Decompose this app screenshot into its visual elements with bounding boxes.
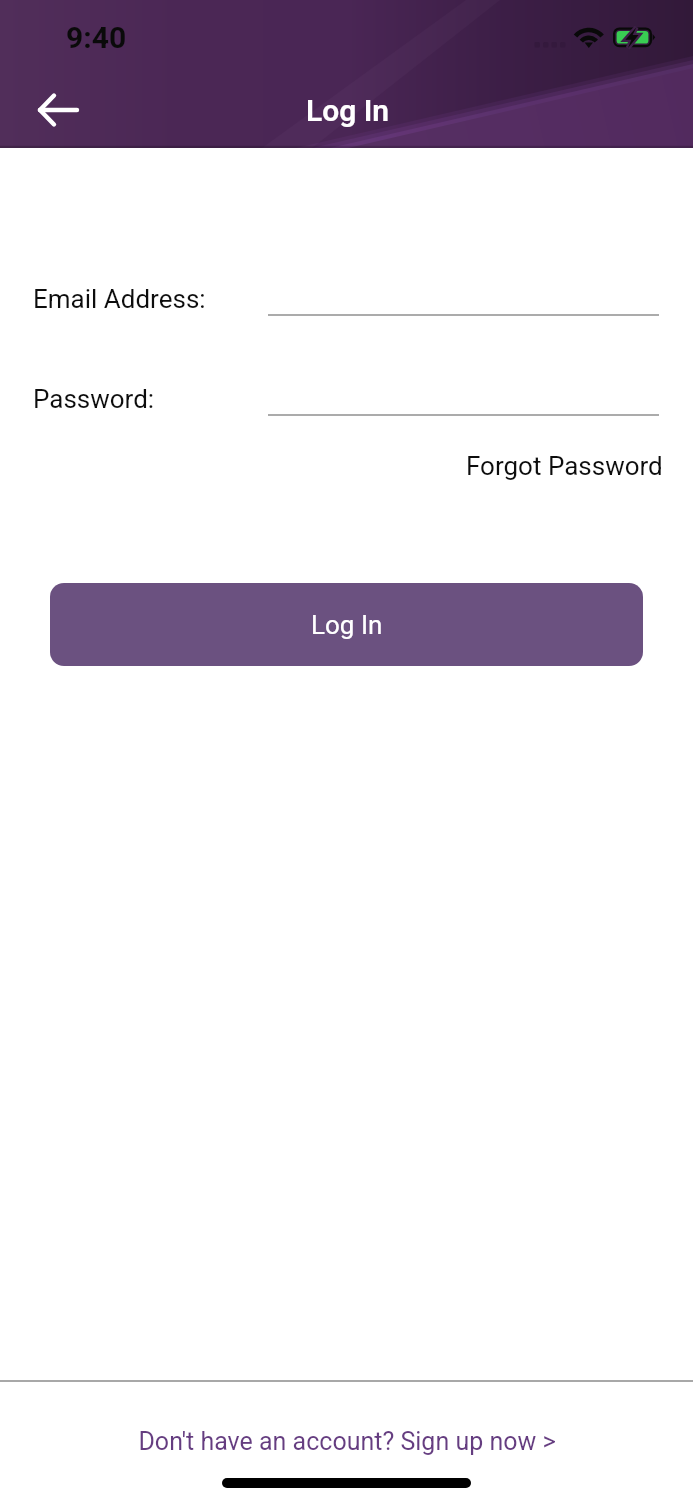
staticText: 9:40 — [66, 20, 127, 55]
staticText: Password: — [33, 384, 155, 414]
button[interactable]: Forgot Password — [462, 447, 667, 485]
staticText: Log In — [306, 93, 390, 128]
staticText: Forgot Password — [466, 451, 663, 481]
button[interactable]: Don't have an account? Sign up now > — [0, 1382, 693, 1476]
button[interactable]: Back — [24, 76, 92, 144]
staticText: Email Address: — [33, 284, 206, 314]
button[interactable]: Log In — [50, 583, 643, 666]
staticText: Log In — [311, 610, 383, 640]
staticText: Don't have an account? Sign up now > — [138, 1427, 556, 1456]
